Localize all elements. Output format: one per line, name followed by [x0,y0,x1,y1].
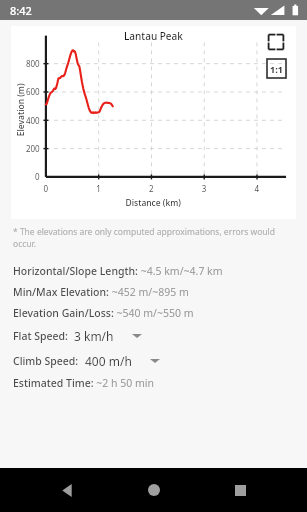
staticText: Horizontal/Slope Length: ~4.5 km/~4.7 km [13,264,223,278]
button[interactable]: Back [47,470,87,510]
button[interactable]: Home [134,470,174,510]
staticText: 1:1 [270,63,283,75]
button[interactable]: Fullscreen [266,32,286,52]
staticText: Flat Speed: [13,329,68,343]
staticText: Elevation Gain/Loss: ~540 m/~550 m [13,306,194,320]
staticText: * The elevations are only computed appro… [13,226,299,250]
staticText: 3 km/h [74,328,114,344]
staticText: 400 m/h [85,353,132,369]
staticText: Min/Max Elevation: ~452 m/~895 m [13,285,189,299]
staticText: 8:42 [10,3,32,18]
button[interactable]: Reset zoom one to one [267,59,286,78]
button[interactable]: Flat Speed: [0,325,307,347]
staticText: Climb Speed: [13,354,79,368]
button[interactable]: Climb Speed: [0,350,307,372]
staticText: Estimated Time: ~2 h 50 min [13,376,155,390]
button[interactable]: Recent apps [220,470,260,510]
